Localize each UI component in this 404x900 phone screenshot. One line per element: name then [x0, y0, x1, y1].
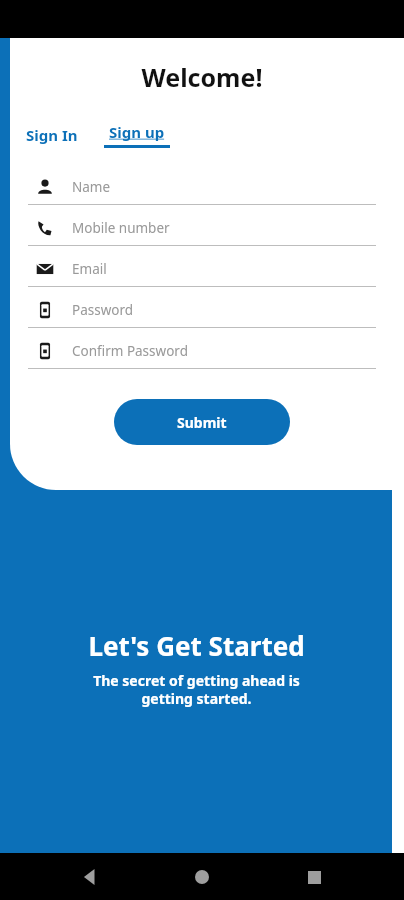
- staticText: Name: [72, 178, 111, 196]
- staticText: Confirm Password: [72, 342, 188, 360]
- button[interactable]: Back: [68, 855, 112, 899]
- staticText: Welcome!: [0, 60, 404, 94]
- button[interactable]: Email: [0, 252, 404, 293]
- button[interactable]: Sign up: [102, 118, 172, 152]
- staticText: Let's Get Started: [88, 628, 305, 663]
- staticText: Submit: [177, 413, 227, 432]
- staticText: Password: [72, 301, 134, 319]
- staticText: Mobile number: [72, 219, 170, 237]
- staticText: Email: [72, 260, 107, 278]
- button[interactable]: Password: [0, 293, 404, 334]
- staticText: Sign In: [26, 125, 78, 145]
- button[interactable]: Sign In: [24, 121, 80, 149]
- button[interactable]: Submit: [114, 399, 290, 445]
- button[interactable]: Name: [0, 170, 404, 211]
- button[interactable]: Mobile number: [0, 211, 404, 252]
- button[interactable]: Confirm Password: [0, 334, 404, 375]
- button[interactable]: Recent apps: [292, 855, 336, 899]
- button[interactable]: Home: [180, 855, 224, 899]
- staticText: The secret of getting ahead is getting s…: [93, 671, 300, 708]
- staticText: Sign up: [109, 122, 165, 142]
